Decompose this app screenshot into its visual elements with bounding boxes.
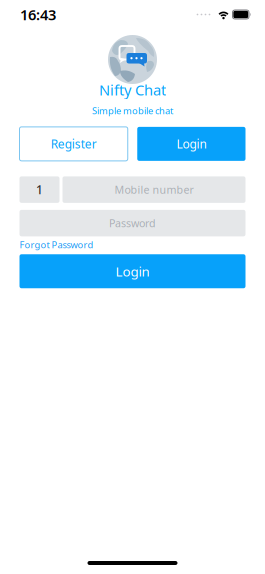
staticText: Login: [176, 136, 206, 152]
staticText: 16:43: [20, 5, 56, 24]
staticText: Password: [109, 216, 156, 230]
button[interactable]: Login: [137, 127, 245, 161]
staticText: Register: [51, 136, 97, 152]
button[interactable]: Login: [19, 254, 245, 288]
staticText: Nifty Chat: [99, 80, 166, 99]
staticText: 1: [36, 182, 43, 198]
staticText: Mobile number: [114, 182, 193, 197]
button[interactable]: Forgot Password: [19, 238, 93, 251]
button[interactable]: Register: [19, 127, 128, 161]
staticText: Forgot Password: [19, 238, 93, 251]
staticText: Login: [115, 262, 149, 280]
staticText: Simple mobile chat: [92, 104, 173, 117]
